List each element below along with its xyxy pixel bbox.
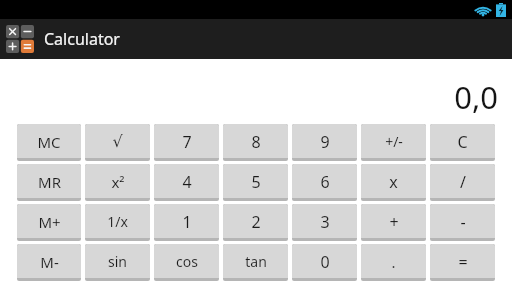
- staticText: 4: [182, 171, 192, 193]
- button[interactable]: x²: [85, 164, 150, 201]
- staticText: tan: [245, 252, 267, 271]
- button[interactable]: 6: [292, 164, 357, 201]
- staticText: 1/x: [107, 212, 128, 231]
- button[interactable]: =: [430, 244, 495, 281]
- button[interactable]: √: [85, 124, 150, 161]
- staticText: Calculator: [44, 28, 120, 50]
- staticText: MR: [38, 172, 61, 192]
- button[interactable]: C: [430, 124, 495, 161]
- button[interactable]: -: [430, 204, 495, 241]
- staticText: 5: [251, 171, 261, 193]
- staticText: x²: [111, 172, 125, 192]
- button[interactable]: cos: [154, 244, 219, 281]
- button[interactable]: 9: [292, 124, 357, 161]
- button[interactable]: x: [361, 164, 426, 201]
- staticText: sin: [108, 252, 127, 271]
- staticText: cos: [176, 252, 198, 271]
- staticText: 6: [320, 171, 330, 193]
- button[interactable]: 5: [223, 164, 288, 201]
- button[interactable]: .: [361, 244, 426, 281]
- button[interactable]: 1: [154, 204, 219, 241]
- button[interactable]: 0,0: [0, 59, 512, 121]
- staticText: C: [457, 131, 468, 153]
- button[interactable]: 7: [154, 124, 219, 161]
- staticText: M+: [38, 212, 61, 232]
- button[interactable]: 1/x: [85, 204, 150, 241]
- staticText: 2: [251, 211, 261, 233]
- staticText: 9: [320, 131, 330, 153]
- button[interactable]: MC: [17, 124, 81, 161]
- staticText: =: [458, 251, 468, 273]
- staticText: M-: [40, 252, 59, 272]
- staticText: √: [112, 132, 123, 151]
- staticText: .: [391, 252, 396, 272]
- button[interactable]: /: [430, 164, 495, 201]
- button[interactable]: 0: [292, 244, 357, 281]
- staticText: 8: [251, 131, 261, 153]
- button[interactable]: M+: [17, 204, 81, 241]
- button[interactable]: tan: [223, 244, 288, 281]
- button[interactable]: MR: [17, 164, 81, 201]
- button[interactable]: sin: [85, 244, 150, 281]
- button[interactable]: M-: [17, 244, 81, 281]
- button[interactable]: +: [361, 204, 426, 241]
- button[interactable]: 2: [223, 204, 288, 241]
- staticText: -: [460, 211, 466, 233]
- staticText: 3: [320, 211, 330, 233]
- staticText: 7: [182, 131, 192, 153]
- staticText: MC: [37, 132, 61, 152]
- staticText: /: [460, 171, 466, 193]
- staticText: +: [389, 211, 399, 233]
- button[interactable]: 3: [292, 204, 357, 241]
- staticText: +/-: [385, 132, 403, 151]
- button[interactable]: 8: [223, 124, 288, 161]
- button[interactable]: +/-: [361, 124, 426, 161]
- staticText: 0: [320, 251, 330, 273]
- button[interactable]: 4: [154, 164, 219, 201]
- staticText: 1: [182, 211, 192, 233]
- staticText: x: [389, 171, 398, 193]
- staticText: 0,0: [454, 76, 498, 118]
